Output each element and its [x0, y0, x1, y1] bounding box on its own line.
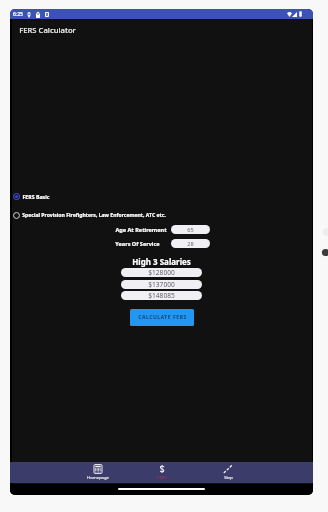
button[interactable]: Homepage — [73, 462, 123, 483]
staticText: Special Provision Firefighters, Law Enfo… — [22, 212, 166, 219]
staticText: FERS Calculator — [19, 25, 76, 35]
button[interactable]: $137000 — [121, 280, 202, 289]
staticText: Step — [224, 475, 233, 481]
button[interactable]: FERS Calculator — [10, 19, 313, 41]
button[interactable]: $148085 — [121, 291, 202, 300]
staticText: $128000 — [148, 268, 175, 277]
staticText: 6:25 — [13, 11, 23, 18]
button[interactable]: $128000 — [121, 268, 202, 277]
button[interactable]: Special Provision Firefighters, Law Enfo… — [10, 208, 313, 222]
staticText: FERS Basic — [22, 193, 50, 200]
staticText: 65 — [187, 226, 194, 234]
staticText: 28 — [187, 240, 194, 248]
staticText: $137000 — [148, 280, 175, 289]
staticText: $148085 — [148, 291, 175, 300]
staticText: Age At Retirement — [115, 226, 167, 234]
staticText: Homepage — [87, 475, 109, 481]
button[interactable]: CALCULATE FERS — [130, 309, 194, 326]
staticText: FERS — [157, 475, 167, 481]
button[interactable]: 65 — [171, 225, 210, 234]
button[interactable]: 28 — [171, 239, 210, 248]
button[interactable]: FERS Basic — [10, 189, 313, 203]
staticText: Years Of Service — [115, 240, 160, 248]
button[interactable]: FERS — [137, 462, 187, 483]
staticText: High 3 Salaries — [132, 256, 191, 267]
button[interactable]: Step — [203, 462, 253, 483]
staticText: CALCULATE FERS — [138, 314, 187, 321]
